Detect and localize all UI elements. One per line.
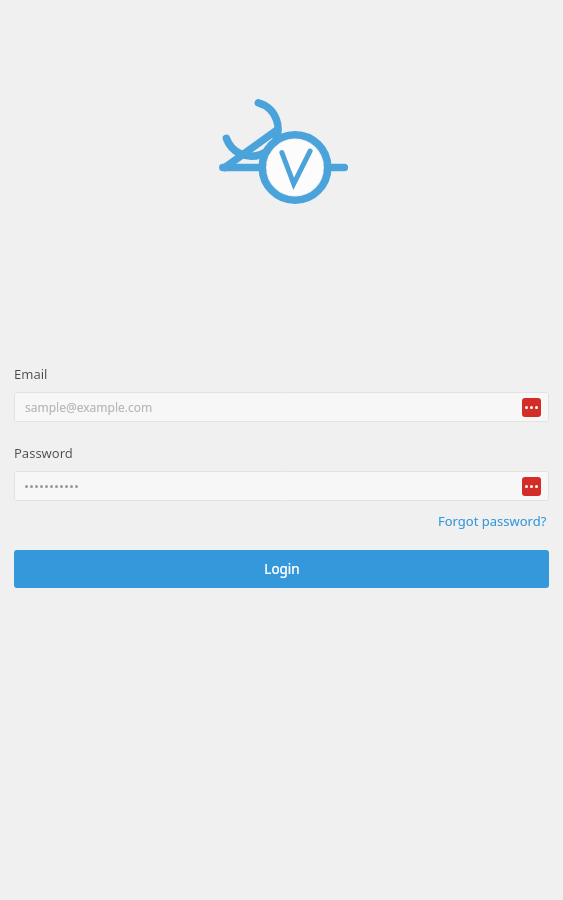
button[interactable]: Autofill password bbox=[14, 471, 549, 501]
button[interactable]: Autofill password bbox=[522, 398, 541, 417]
button[interactable]: Login bbox=[14, 550, 549, 588]
button[interactable]: Forgot password? bbox=[436, 510, 549, 532]
button[interactable]: sample@example.com bbox=[14, 392, 549, 422]
staticText: Email bbox=[14, 365, 48, 383]
staticText: Password bbox=[14, 444, 73, 462]
staticText: Login bbox=[264, 560, 300, 578]
staticText: Forgot password? bbox=[438, 512, 547, 530]
staticText: sample@example.com bbox=[25, 399, 153, 415]
button[interactable]: Autofill password bbox=[522, 477, 541, 496]
